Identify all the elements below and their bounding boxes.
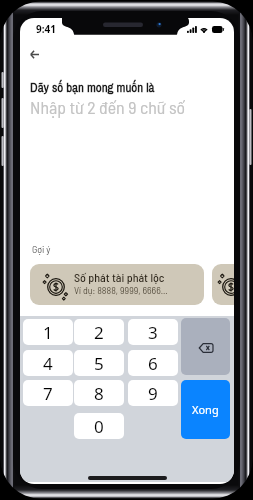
button[interactable]: 4 — [23, 350, 73, 376]
staticText: Dãy số bạn mong muốn là — [30, 79, 155, 97]
button[interactable]: 6 — [128, 350, 178, 376]
button[interactable]: 3 — [128, 319, 178, 345]
button[interactable]: Số phát tài phát lộc — [30, 264, 204, 305]
button[interactable]: 8 — [74, 380, 124, 406]
button[interactable]: Xong — [181, 380, 230, 439]
staticText: 6 — [148, 352, 158, 375]
button[interactable]: 1 — [23, 319, 73, 345]
staticText: 8 — [94, 382, 104, 405]
button[interactable]: 5 — [74, 350, 124, 376]
staticText: 3 — [148, 321, 158, 344]
button[interactable]: 0 — [74, 413, 124, 439]
button[interactable]: Back — [22, 42, 46, 66]
button[interactable]: 9 — [128, 380, 178, 406]
staticText: Ví dụ: 8888, 9999, 6666... — [74, 284, 168, 296]
button[interactable]: 7 — [23, 380, 73, 406]
staticText: 4 — [43, 352, 53, 375]
staticText: 1 — [43, 321, 53, 344]
button[interactable] — [212, 264, 234, 305]
staticText: 2 — [94, 321, 104, 344]
staticText: 9 — [148, 382, 158, 405]
staticText: 7 — [43, 382, 53, 405]
button[interactable]: Delete — [181, 318, 230, 375]
staticText: 9:41 — [36, 22, 56, 36]
button[interactable]: 2 — [74, 319, 124, 345]
staticText: Gợi ý — [32, 243, 51, 255]
staticText: 5 — [94, 352, 104, 375]
staticText: Số phát tài phát lộc — [74, 270, 165, 284]
staticText: Xong — [192, 402, 219, 417]
staticText: 0 — [94, 415, 104, 438]
staticText: Nhập từ 2 đến 9 chữ số — [30, 96, 185, 117]
